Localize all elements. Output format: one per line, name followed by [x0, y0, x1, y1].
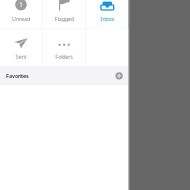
button[interactable]: Sent: [0, 28, 42, 66]
button[interactable]: 1: [0, 0, 42, 28]
staticText: Favorites: [6, 72, 29, 79]
staticText: Folders: [55, 53, 73, 60]
staticText: Flagged: [55, 15, 74, 22]
button[interactable]: Folders: [43, 28, 85, 66]
staticText: Sent: [15, 53, 26, 60]
button[interactable]: Add favorite: [113, 66, 126, 85]
staticText: 1: [19, 0, 23, 9]
staticText: Unread: [12, 15, 30, 22]
staticText: Inbox: [100, 15, 114, 22]
button[interactable]: Inbox: [86, 0, 129, 28]
button[interactable]: Flagged: [43, 0, 85, 28]
